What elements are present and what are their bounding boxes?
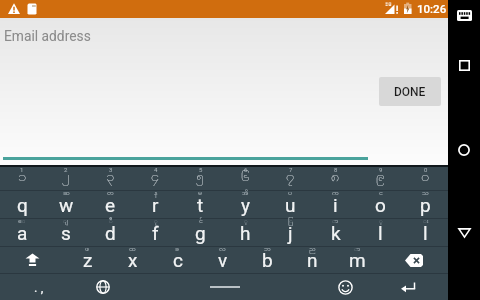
button[interactable]: Emoji	[322, 274, 368, 300]
button[interactable]: DONE	[379, 77, 441, 106]
staticText: 10:26	[417, 2, 447, 15]
staticText: ၇	[286, 169, 295, 187]
button[interactable]: 7	[268, 167, 313, 190]
button[interactable]: ာ	[313, 219, 358, 246]
button[interactable]: 4	[133, 167, 178, 190]
staticText: ထ	[129, 246, 136, 254]
staticText: d	[105, 222, 116, 244]
button[interactable]: မ	[178, 191, 223, 218]
staticText: ိီ	[109, 218, 113, 226]
button[interactable]: ပ	[268, 191, 313, 218]
button[interactable]: Home	[448, 139, 480, 161]
button[interactable]: Space	[128, 274, 322, 300]
button[interactable]: ထ	[110, 247, 155, 273]
staticText: င	[379, 190, 383, 198]
staticText: e	[105, 194, 116, 216]
staticText: သ	[422, 190, 429, 198]
staticText: မ	[198, 190, 203, 198]
staticText: o	[375, 194, 386, 216]
staticText: n	[307, 249, 318, 271]
staticText: l	[423, 222, 428, 244]
staticText: ၀	[421, 169, 430, 187]
staticText: ၃	[106, 169, 115, 187]
button[interactable]: ခ	[155, 247, 200, 273]
staticText: ၉	[376, 169, 385, 187]
staticText: 0	[424, 166, 428, 173]
staticText: f	[152, 222, 159, 244]
staticText: b	[262, 249, 273, 271]
button[interactable]: Shift	[0, 247, 65, 273]
staticText: l	[378, 222, 383, 244]
button[interactable]: Recent apps	[448, 54, 480, 76]
button[interactable]: တ	[88, 191, 133, 218]
staticText: 3	[109, 166, 113, 173]
staticText: အိ	[242, 190, 249, 198]
staticText: ဖ	[85, 246, 90, 254]
button[interactable]: Change language	[78, 274, 128, 300]
staticText: ု	[154, 218, 158, 226]
button[interactable]: 9	[358, 167, 403, 190]
button[interactable]: အိ	[223, 191, 268, 218]
button[interactable]: Show keyboard	[448, 4, 480, 26]
button[interactable]: င်	[178, 219, 223, 246]
staticText: q	[17, 194, 28, 216]
staticText: ၆	[241, 169, 250, 187]
button[interactable]: Enter	[368, 274, 448, 300]
button[interactable]: င	[358, 191, 403, 218]
staticText: ဆ	[63, 190, 70, 198]
staticText: ျ	[63, 218, 69, 226]
staticText: ၈	[331, 169, 340, 187]
button[interactable]: 3	[88, 167, 133, 190]
button[interactable]: 6	[223, 167, 268, 190]
button[interactable]: ိီ	[88, 219, 133, 246]
button[interactable]: ု	[133, 219, 178, 246]
staticText: န	[154, 190, 158, 198]
staticText: Email address	[4, 28, 91, 44]
button[interactable]: q	[0, 191, 44, 218]
staticText: y	[241, 194, 250, 216]
button[interactable]: 0	[403, 167, 448, 190]
staticText: က	[332, 190, 339, 198]
button[interactable]: ည	[290, 247, 335, 273]
staticText: ၅	[196, 169, 205, 187]
staticText: k	[331, 222, 341, 244]
staticText: 6	[244, 166, 248, 173]
staticText: ့	[244, 218, 248, 226]
staticText: ာ	[354, 246, 361, 254]
staticText: 5	[199, 166, 203, 173]
staticText: s	[61, 222, 71, 244]
button[interactable]: Back	[448, 222, 480, 244]
staticText: v	[218, 249, 228, 271]
staticText: . ,	[34, 280, 44, 295]
button[interactable]: ဘ	[245, 247, 290, 273]
button[interactable]: ့	[223, 219, 268, 246]
staticText: w	[59, 194, 74, 216]
button[interactable]: ြ	[268, 219, 313, 246]
button[interactable]: . ,	[0, 274, 78, 300]
button[interactable]: န	[133, 191, 178, 218]
button[interactable]: ျ	[44, 219, 88, 246]
staticText: ၁	[18, 169, 26, 187]
button[interactable]: ဖ	[65, 247, 110, 273]
staticText: ၄	[151, 169, 160, 187]
staticText: ြ	[288, 218, 293, 226]
button[interactable]: ဆ	[44, 191, 88, 218]
button[interactable]: သ	[403, 191, 448, 218]
button[interactable]: Backspace	[380, 247, 448, 273]
button[interactable]: ့	[358, 219, 403, 246]
staticText: 7	[289, 166, 293, 173]
button[interactable]: း	[403, 219, 448, 246]
button[interactable]: 2	[44, 167, 88, 190]
button[interactable]: 1	[0, 167, 44, 190]
button[interactable]: လ	[200, 247, 245, 273]
button[interactable]: ာ	[335, 247, 380, 273]
staticText: 9	[379, 166, 383, 173]
button[interactable]: က	[313, 191, 358, 218]
button[interactable]: 8	[313, 167, 358, 190]
staticText: 1	[20, 166, 24, 173]
button[interactable]: ေ	[0, 219, 44, 246]
staticText: p	[420, 194, 431, 216]
staticText: u	[285, 194, 296, 216]
button[interactable]: 5	[178, 167, 223, 190]
staticText: း	[423, 218, 429, 226]
